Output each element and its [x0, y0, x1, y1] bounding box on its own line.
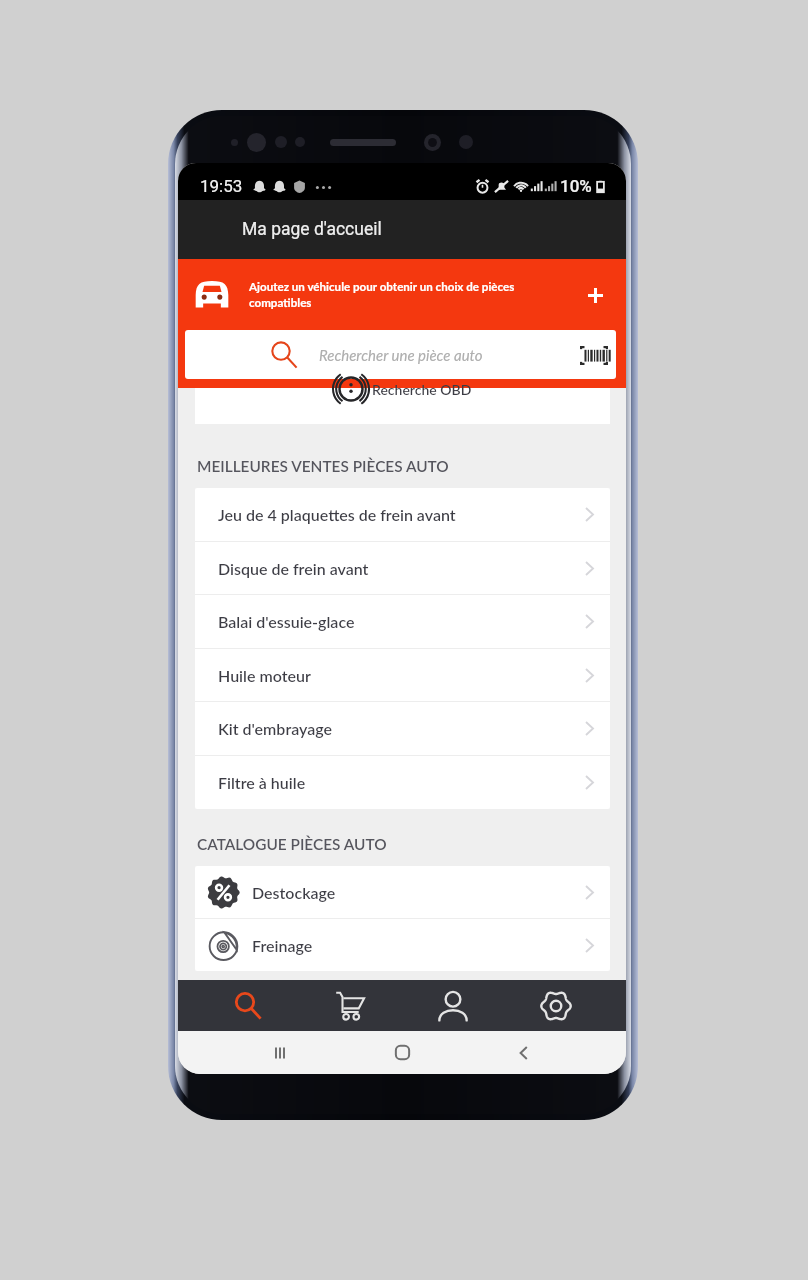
button[interactable]: Balai d'essuie-glace [195, 595, 610, 649]
button[interactable]: Rechercher [197, 980, 299, 1031]
button[interactable]: Freinage [195, 919, 610, 971]
staticText: Filtre à huile [218, 773, 306, 792]
staticText: Disque de frein avant [218, 559, 369, 578]
staticText: Balai d'essuie-glace [218, 612, 355, 631]
staticText: Ma page d'accueil [242, 219, 382, 240]
button[interactable]: Panier [299, 980, 401, 1031]
button[interactable]: Compte [401, 980, 504, 1031]
staticText: Freinage [252, 936, 313, 955]
staticText: Recherche OBD [372, 381, 472, 398]
button[interactable]: Destockage [195, 866, 610, 919]
button[interactable]: Kit d'embrayage [195, 702, 610, 756]
button[interactable]: Rechercher une pièce auto [185, 330, 616, 379]
staticText: Destockage [252, 883, 336, 902]
staticText: Huile moteur [218, 666, 311, 685]
staticText: Ajoutez un véhicule pour obtenir un choi… [249, 280, 575, 310]
button[interactable]: Filtre à huile [195, 756, 610, 809]
staticText: MEILLEURES VENTES PIÈCES AUTO [197, 457, 449, 475]
staticText: Kit d'embrayage [218, 719, 332, 738]
staticText: CATALOGUE PIÈCES AUTO [197, 835, 387, 853]
button[interactable]: Ajouter un véhicule [575, 275, 615, 315]
button[interactable]: Réglages [504, 980, 607, 1031]
staticText: Rechercher une pièce auto [319, 346, 483, 364]
staticText: 19:53 [200, 176, 243, 196]
button[interactable]: Huile moteur [195, 649, 610, 702]
staticText: 10% [560, 176, 592, 196]
button[interactable]: Disque de frein avant [195, 542, 610, 595]
staticText: Jeu de 4 plaquettes de frein avant [218, 505, 456, 524]
button[interactable]: Jeu de 4 plaquettes de frein avant [195, 488, 610, 542]
